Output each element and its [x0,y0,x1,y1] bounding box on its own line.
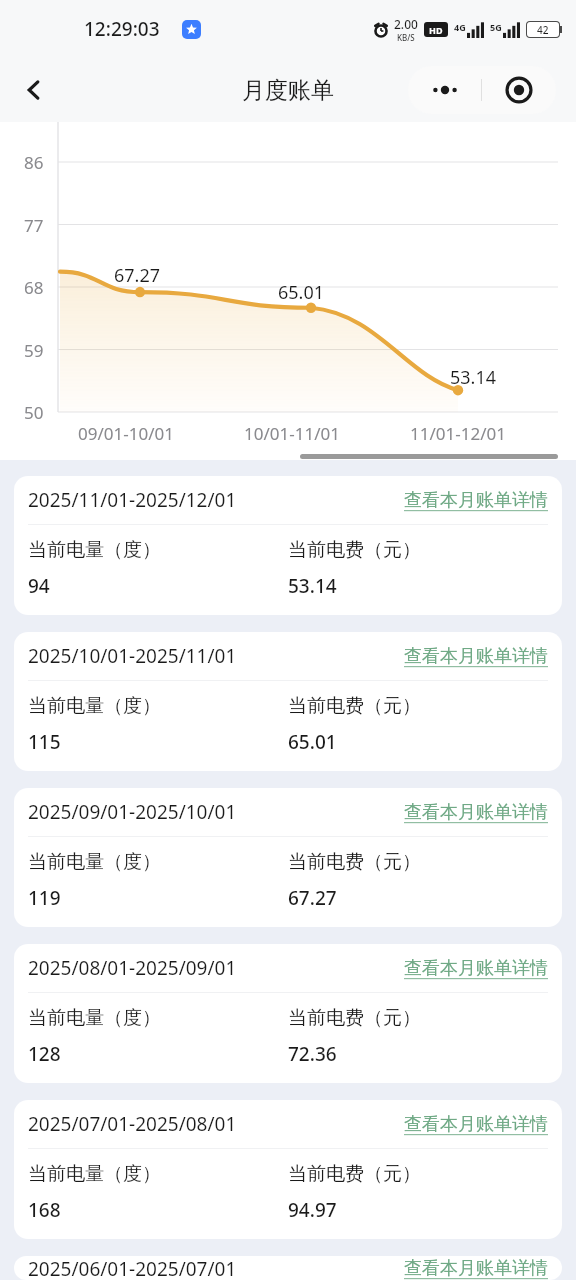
staticText: HD [429,24,443,36]
button[interactable]: 查看本月账单详情 [404,957,548,980]
staticText: 查看本月账单详情 [404,645,548,668]
staticText: 查看本月账单详情 [404,957,548,980]
staticText: 68 [24,276,44,299]
button[interactable]: Back [8,64,60,116]
staticText: 2025/11/01-2025/12/01 [28,487,237,513]
staticText: 5G [490,21,502,33]
staticText: 65.01 [278,280,325,305]
staticText: 查看本月账单详情 [404,801,548,824]
button[interactable]: 2025/07/01-2025/08/01 [14,1100,562,1239]
staticText: 2.00 [394,16,418,32]
button[interactable]: 查看本月账单详情 [404,801,548,824]
staticText: 当前电费（元） [288,850,421,874]
staticText: 2025/08/01-2025/09/01 [28,955,237,981]
staticText: 59 [24,339,44,362]
staticText: 查看本月账单详情 [404,1113,548,1136]
staticText: 53.14 [450,365,497,390]
staticText: 月度账单 [242,76,334,105]
staticText: 当前电费（元） [288,1162,421,1186]
staticText: 94 [28,573,50,599]
staticText: 94.97 [288,1197,337,1223]
staticText: 当前电费（元） [288,538,421,562]
staticText: 2025/06/01-2025/07/01 [28,1256,237,1280]
staticText: 53.14 [288,573,337,599]
button[interactable]: 2025/08/01-2025/09/01 [14,944,562,1083]
button[interactable]: Close [482,66,556,114]
staticText: 2025/07/01-2025/08/01 [28,1111,237,1137]
button[interactable]: 2025/06/01-2025/07/01 [14,1256,562,1280]
staticText: 10/01-11/01 [222,422,362,445]
staticText: 09/01-10/01 [56,422,196,445]
button[interactable]: 查看本月账单详情 [404,645,548,668]
staticText: 查看本月账单详情 [404,1257,548,1280]
button[interactable]: 2025/10/01-2025/11/01 [14,632,562,771]
button[interactable]: More options [408,66,481,114]
staticText: 11/01-12/01 [388,422,528,445]
staticText: 72.36 [288,1041,337,1067]
staticText: 当前电量（度） [28,538,161,562]
button[interactable]: 2025/09/01-2025/10/01 [14,788,562,927]
staticText: 2025/09/01-2025/10/01 [28,799,237,825]
staticText: 当前电费（元） [288,694,421,718]
staticText: 77 [24,214,44,237]
staticText: 12:29:03 [84,16,160,42]
button[interactable]: 2025/11/01-2025/12/01 [14,476,562,615]
staticText: 4G [454,21,466,33]
staticText: 当前电量（度） [28,694,161,718]
button[interactable]: 查看本月账单详情 [404,1113,548,1136]
staticText: 65.01 [288,729,337,755]
staticText: 50 [24,401,44,424]
staticText: 当前电量（度） [28,1162,161,1186]
staticText: 42 [537,23,549,37]
staticText: 128 [28,1041,61,1067]
staticText: 当前电量（度） [28,1006,161,1030]
button[interactable]: 查看本月账单详情 [404,1257,548,1280]
staticText: KB/S [397,32,415,43]
staticText: 67.27 [288,885,337,911]
button[interactable]: 查看本月账单详情 [404,489,548,512]
staticText: 119 [28,885,61,911]
staticText: 86 [24,151,44,174]
staticText: 115 [28,729,61,755]
staticText: 67.27 [114,263,161,288]
staticText: 2025/10/01-2025/11/01 [28,643,237,669]
staticText: 168 [28,1197,61,1223]
staticText: 当前电费（元） [288,1006,421,1030]
staticText: 当前电量（度） [28,850,161,874]
staticText: 查看本月账单详情 [404,489,548,512]
